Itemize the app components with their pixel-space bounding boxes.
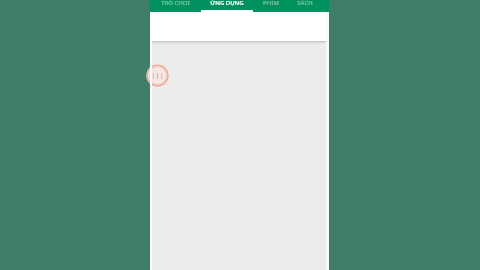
- button[interactable]: SÁCH: [288, 0, 322, 12]
- staticText: PHIM: [263, 0, 279, 7]
- staticText: SÁCH: [297, 0, 313, 7]
- button[interactable]: TRÒ CHƠI: [150, 0, 201, 12]
- staticText: ỨNG DỤNG: [210, 0, 244, 7]
- button[interactable]: ỨNG DỤNG: [201, 0, 253, 12]
- staticText: TRÒ CHƠI: [161, 0, 190, 7]
- button[interactable]: PHIM: [253, 0, 288, 12]
- button[interactable]: App icon: [146, 64, 169, 87]
